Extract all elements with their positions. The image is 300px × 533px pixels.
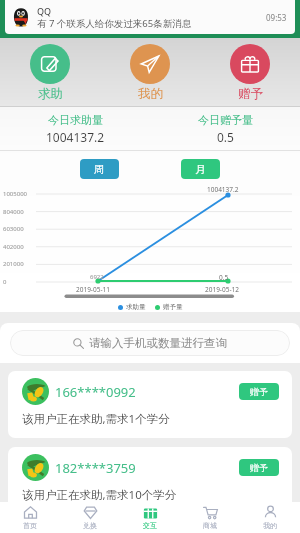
- staticText: 我的: [138, 86, 163, 102]
- staticText: 2019-05-11: [76, 285, 110, 294]
- staticText: QQ: [37, 5, 52, 17]
- staticText: 402000: [3, 243, 24, 251]
- staticText: 2019-05-12: [205, 285, 239, 294]
- staticText: 0: [3, 278, 7, 286]
- button[interactable]: 请输入手机或数量进行查询: [10, 330, 290, 356]
- button[interactable]: 求助: [0, 44, 100, 102]
- staticText: 周: [94, 163, 105, 176]
- staticText: 求助: [38, 86, 63, 102]
- staticText: 求助量: [126, 303, 146, 311]
- staticText: 该用户正在求助,需求1个学分: [22, 411, 170, 427]
- button[interactable]: 182****3759: [8, 447, 292, 514]
- button[interactable]: 我的: [100, 44, 200, 102]
- staticText: 今日赠予量: [198, 113, 253, 127]
- button[interactable]: 今日赠予量: [150, 107, 300, 150]
- staticText: 0.5: [217, 129, 234, 145]
- staticText: 182****3759: [55, 459, 136, 477]
- button[interactable]: QQ: [5, 0, 295, 34]
- staticText: 首页: [23, 521, 37, 530]
- staticText: 09:53: [266, 12, 287, 23]
- staticText: 兑换: [83, 521, 97, 530]
- button[interactable]: 周: [80, 159, 119, 179]
- button[interactable]: 交互: [120, 502, 180, 533]
- button[interactable]: 兑换: [60, 502, 120, 533]
- staticText: 今日求助量: [48, 113, 103, 127]
- staticText: 有 7 个联系人给你发过来65条新消息: [37, 17, 192, 30]
- staticText: 赠予: [238, 86, 263, 102]
- staticText: 1004137.2: [46, 129, 105, 145]
- staticText: 赠予: [250, 386, 268, 397]
- staticText: 0.5: [219, 273, 229, 282]
- staticText: 603000: [3, 225, 24, 233]
- button[interactable]: 赠予: [200, 44, 300, 102]
- staticText: 请输入手机或数量进行查询: [89, 336, 227, 350]
- staticText: 月: [195, 163, 206, 176]
- staticText: 赠予量: [163, 303, 183, 311]
- staticText: 804000: [3, 208, 24, 216]
- button[interactable]: 月: [181, 159, 220, 179]
- staticText: 166****0992: [55, 383, 136, 401]
- staticText: 6922: [90, 273, 104, 281]
- button[interactable]: 我的: [240, 502, 300, 533]
- button[interactable]: 商城: [180, 502, 240, 533]
- staticText: 该用户正在求助,需求10个学分: [22, 487, 177, 503]
- staticText: 商城: [203, 521, 217, 530]
- button[interactable]: 今日求助量: [0, 107, 150, 150]
- staticText: 1005000: [3, 190, 28, 198]
- staticText: 我的: [263, 521, 277, 530]
- staticText: 交互: [143, 521, 157, 530]
- button[interactable]: 赠予: [239, 383, 279, 400]
- button[interactable]: 赠予: [239, 459, 279, 476]
- staticText: 赠予: [250, 462, 268, 473]
- staticText: 201000: [3, 260, 24, 268]
- staticText: 1004137.2: [207, 185, 239, 194]
- button[interactable]: 166****0992: [8, 371, 292, 438]
- button[interactable]: 首页: [0, 502, 60, 533]
